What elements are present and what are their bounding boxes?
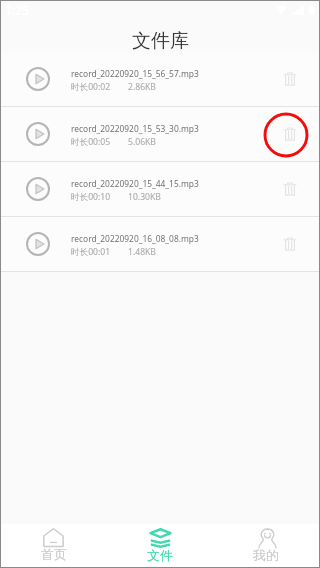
button[interactable]: Profile: [213, 524, 319, 567]
button[interactable]: Delete: [261, 162, 319, 216]
other: Play: [26, 232, 50, 256]
staticText: 5.06KB: [128, 136, 156, 148]
other: Home: [43, 528, 64, 547]
button[interactable]: Play: [1, 217, 319, 271]
staticText: record_20220920_16_08_08.mp3: [71, 233, 199, 244]
staticText: 10.30KB: [128, 191, 161, 203]
staticText: 文件库: [132, 29, 189, 53]
other: Profile: [258, 528, 277, 548]
staticText: record_20220920_15_53_30.mp3: [71, 123, 199, 134]
button[interactable]: Home: [1, 524, 107, 567]
button[interactable]: Play: [1, 52, 319, 106]
button[interactable]: Files: [107, 524, 213, 567]
staticText: 1.48KB: [128, 246, 156, 258]
staticText: 时长00:10: [71, 191, 111, 203]
button[interactable]: Delete: [261, 107, 319, 161]
button[interactable]: Play: [1, 107, 319, 161]
other: Files: [149, 528, 172, 548]
button[interactable]: Delete: [261, 217, 319, 271]
staticText: 2.86KB: [128, 81, 156, 93]
staticText: 文件: [147, 547, 173, 563]
staticText: 时长00:05: [71, 136, 111, 148]
staticText: 时长00:01: [71, 246, 111, 258]
other: Play: [26, 177, 50, 201]
staticText: 时长00:02: [71, 81, 111, 93]
button[interactable]: Play: [1, 162, 319, 216]
staticText: 我的: [253, 547, 279, 563]
staticText: record_20220920_15_56_57.mp3: [71, 68, 199, 79]
button[interactable]: Delete: [261, 52, 319, 106]
other: Play: [26, 67, 50, 91]
staticText: 首页: [41, 546, 67, 562]
other: Play: [26, 122, 50, 146]
staticText: record_20220920_15_44_15.mp3: [71, 178, 199, 189]
